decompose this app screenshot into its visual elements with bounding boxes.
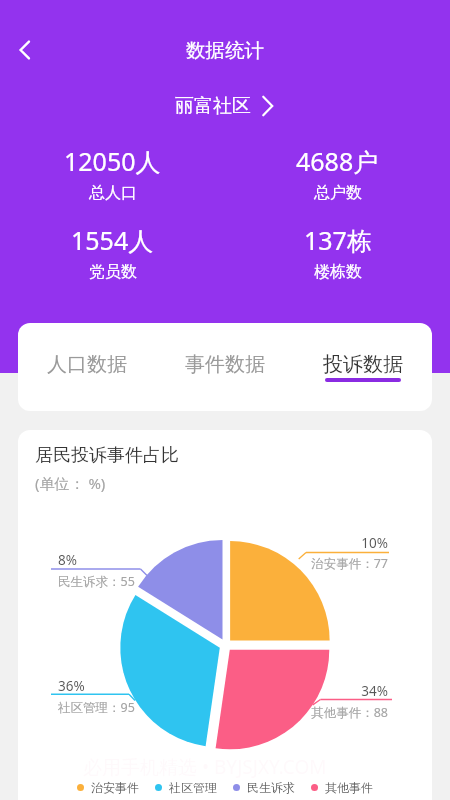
button[interactable]: 事件数据 <box>156 323 294 411</box>
staticText: 社区管理：95 <box>58 699 152 716</box>
button[interactable]: 治安事件 <box>77 780 139 795</box>
staticText: 居民投诉事件占比 <box>35 444 179 467</box>
staticText: 总户数 <box>314 183 362 203</box>
staticText: 1554人 <box>71 223 154 257</box>
staticText: 治安事件：77 <box>294 555 388 572</box>
staticText: 事件数据 <box>185 352 265 374</box>
staticText: 总人口 <box>89 183 137 203</box>
staticText: 8% <box>58 551 152 569</box>
button[interactable]: 其他事件 <box>311 780 373 795</box>
staticText: 137栋 <box>304 223 372 257</box>
staticText: 人口数据 <box>47 352 127 374</box>
staticText: 楼栋数 <box>314 262 362 282</box>
staticText: 民生诉求 <box>247 780 295 795</box>
staticText: (单位： %) <box>35 473 106 493</box>
staticText: 治安事件 <box>91 780 139 795</box>
staticText: 投诉数据 <box>323 352 403 374</box>
button[interactable]: 人口数据 <box>18 323 156 411</box>
staticText: 丽富社区 <box>175 94 251 118</box>
button[interactable]: Back <box>9 34 41 66</box>
button[interactable]: 民生诉求 <box>233 780 295 795</box>
staticText: 社区管理 <box>169 780 217 795</box>
staticText: 党员数 <box>89 262 137 282</box>
button[interactable]: 社区管理 <box>155 780 217 795</box>
button[interactable]: 投诉数据 <box>294 323 432 411</box>
button[interactable]: 丽富社区 <box>175 94 276 118</box>
staticText: 12050人 <box>64 144 161 178</box>
staticText: 10% <box>294 534 388 552</box>
staticText: 数据统计 <box>0 38 450 63</box>
staticText: 36% <box>58 677 152 695</box>
staticText: 民生诉求：55 <box>58 573 152 590</box>
staticText: 34% <box>294 682 388 700</box>
staticText: 其他事件：88 <box>294 704 388 721</box>
staticText: 其他事件 <box>325 780 373 795</box>
staticText: 4688户 <box>296 144 379 178</box>
